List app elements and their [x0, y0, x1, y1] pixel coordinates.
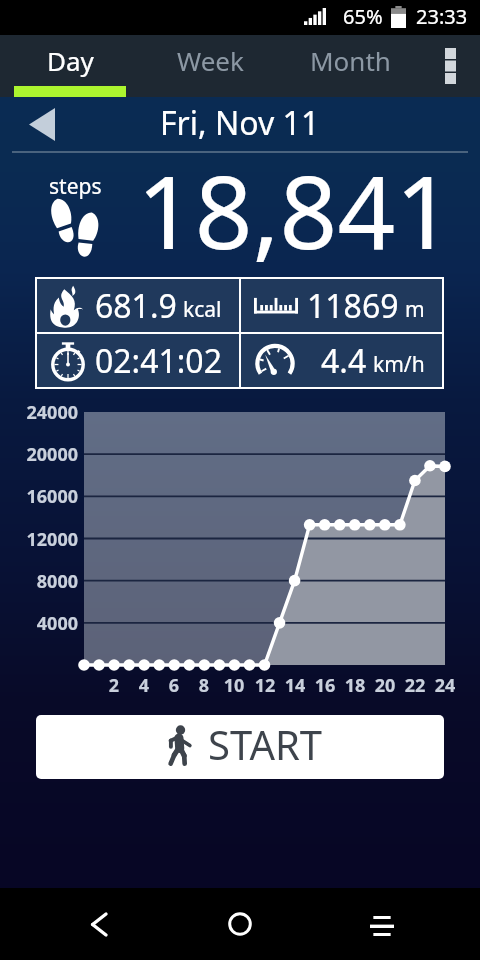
button[interactable]: Month — [280, 35, 420, 97]
staticText: 4 — [124, 673, 164, 698]
staticText: steps — [49, 172, 102, 201]
button[interactable]: Back — [58, 898, 139, 950]
button[interactable]: START — [36, 715, 444, 779]
button[interactable]: 11869 — [241, 279, 442, 332]
staticText: 65% — [343, 3, 383, 30]
button[interactable]: 02:41:02 — [37, 334, 239, 387]
staticText: Fri, Nov 11 — [160, 101, 320, 145]
staticText: START — [208, 717, 323, 771]
staticText: 18 — [335, 673, 375, 698]
staticText: m — [405, 295, 425, 324]
staticText: 14 — [275, 673, 315, 698]
staticText: 681.9 — [95, 284, 177, 328]
staticText: 10 — [214, 673, 254, 698]
staticText: 18,841 — [137, 141, 453, 279]
staticText: 16000 — [0, 484, 78, 509]
staticText: 12000 — [0, 527, 78, 552]
button[interactable]: Week — [140, 35, 280, 97]
staticText: kcal — [183, 295, 222, 324]
staticText: 20000 — [0, 442, 78, 467]
button[interactable]: 681.9 — [37, 279, 239, 332]
staticText: 11869 — [307, 284, 399, 328]
staticText: 4000 — [0, 611, 78, 636]
staticText: Month — [310, 43, 391, 78]
staticText: 8 — [184, 673, 224, 698]
staticText: 16 — [305, 673, 345, 698]
staticText: 22 — [395, 673, 435, 698]
staticText: 23:33 — [416, 3, 468, 30]
staticText: km/h — [373, 350, 425, 379]
button[interactable]: Recent apps — [341, 900, 422, 952]
button[interactable]: Home — [199, 898, 280, 950]
staticText: 12 — [245, 673, 285, 698]
staticText: 6 — [154, 673, 194, 698]
button[interactable]: 4.4 — [241, 334, 442, 387]
button[interactable]: Day — [0, 35, 140, 97]
staticText: 2 — [94, 673, 134, 698]
button[interactable]: More options — [420, 35, 480, 97]
staticText: 4.4 — [321, 339, 367, 383]
staticText: 8000 — [0, 569, 78, 594]
staticText: 20 — [365, 673, 405, 698]
button[interactable]: Previous day — [20, 104, 64, 144]
staticText: 24 — [425, 673, 465, 698]
staticText: Week — [177, 43, 244, 78]
staticText: 02:41:02 — [95, 339, 222, 383]
staticText: 24000 — [0, 400, 78, 425]
staticText: Day — [47, 43, 94, 78]
